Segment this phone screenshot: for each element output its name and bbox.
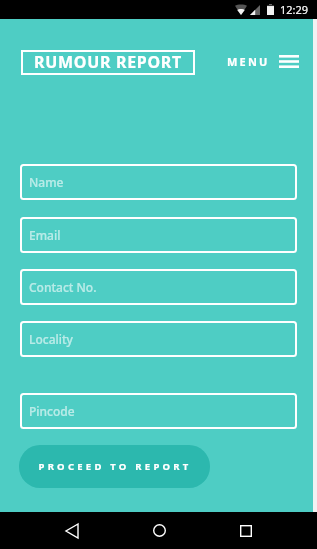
button[interactable]: Menu [227, 54, 299, 69]
staticText: RUMOUR REPORT [34, 51, 182, 73]
button[interactable]: PROCEED TO REPORT [19, 445, 210, 488]
button[interactable]: Email [20, 217, 297, 253]
staticText: Pincode [29, 403, 75, 419]
staticText: Contact No. [29, 279, 97, 295]
staticText: MENU [227, 54, 270, 69]
button[interactable]: Locality [20, 321, 297, 357]
button[interactable]: Home [139, 512, 179, 549]
button[interactable]: Contact No. [20, 269, 297, 305]
staticText: 12:29 [280, 2, 309, 17]
button[interactable]: Recents [226, 512, 266, 549]
button[interactable]: Back [52, 512, 92, 549]
button[interactable]: Pincode [20, 393, 297, 429]
button[interactable]: RUMOUR REPORT [21, 50, 195, 75]
staticText: PROCEED TO REPORT [38, 460, 192, 473]
staticText: Email [29, 227, 61, 243]
staticText: Name [29, 174, 64, 190]
button[interactable]: Name [20, 164, 297, 200]
staticText: Locality [29, 331, 73, 347]
